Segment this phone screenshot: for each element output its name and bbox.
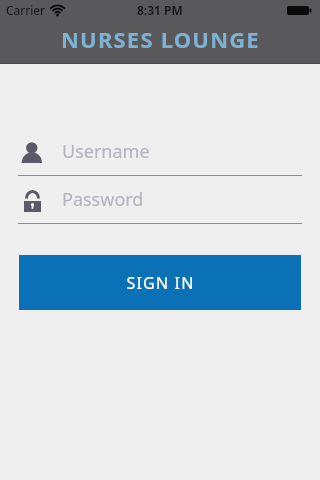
- staticText: 8:31 PM: [137, 2, 183, 18]
- staticText: Password: [62, 187, 144, 212]
- button[interactable]: Username: [0, 128, 320, 175]
- staticText: NURSES LOUNGE: [61, 24, 260, 54]
- button[interactable]: SIGN IN: [19, 255, 301, 310]
- button[interactable]: Password: [0, 176, 320, 223]
- staticText: Carrier: [6, 2, 46, 18]
- staticText: Username: [62, 139, 150, 164]
- staticText: SIGN IN: [126, 272, 195, 294]
